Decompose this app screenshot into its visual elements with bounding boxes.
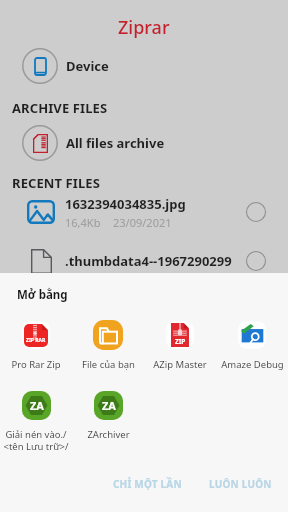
button[interactable]: Amaze Debug bbox=[216, 319, 288, 389]
staticText: ZA bbox=[102, 398, 116, 413]
staticText: ZA bbox=[30, 398, 44, 413]
button[interactable]: ZA bbox=[0, 389, 72, 463]
staticText: Ziprar bbox=[118, 15, 170, 40]
staticText: 23/09/2021 bbox=[113, 215, 172, 230]
button[interactable]: File của bạn bbox=[72, 319, 144, 389]
button[interactable]: Select file bbox=[240, 245, 272, 277]
staticText: All files archive bbox=[66, 134, 165, 152]
staticText: File của bạn bbox=[82, 358, 135, 371]
button[interactable]: All files archive bbox=[0, 125, 288, 161]
staticText: Device bbox=[66, 57, 109, 75]
button[interactable]: CHỈ MỘT LẦN bbox=[105, 470, 190, 498]
staticText: AZip Master bbox=[153, 358, 207, 371]
button[interactable]: .thumbdata4--1967290299 bbox=[0, 239, 288, 283]
staticText: RECENT FILES bbox=[12, 174, 100, 192]
staticText: ARCHIVE FILES bbox=[12, 99, 108, 117]
staticText: ZArchiver bbox=[87, 428, 130, 441]
button[interactable]: ZIP RAR bbox=[0, 319, 72, 389]
button[interactable]: ZA bbox=[72, 389, 144, 463]
staticText: CHỈ MỘT LẦN bbox=[113, 477, 182, 491]
staticText: ZIP RAR bbox=[26, 337, 46, 344]
staticText: Mở bằng bbox=[17, 287, 68, 303]
staticText: ZIP bbox=[175, 337, 186, 346]
button[interactable]: ZIP bbox=[144, 319, 216, 389]
staticText: Giải nén vào./ <tên Lưu trữ>/ bbox=[3, 428, 69, 453]
staticText: Amaze Debug bbox=[221, 358, 284, 371]
staticText: Pro Rar Zip bbox=[11, 358, 61, 371]
button[interactable]: Device bbox=[0, 48, 288, 84]
button[interactable]: Select file bbox=[240, 196, 272, 228]
staticText: LUÔN LUÔN bbox=[209, 477, 272, 491]
staticText: 1632394034835.jpg bbox=[65, 195, 186, 213]
staticText: .thumbdata4--1967290299 bbox=[65, 252, 232, 270]
staticText: 16,4Kb bbox=[65, 215, 101, 230]
button[interactable]: LUÔN LUÔN bbox=[201, 470, 280, 498]
button[interactable]: 1632394034835.jpg bbox=[0, 190, 288, 234]
